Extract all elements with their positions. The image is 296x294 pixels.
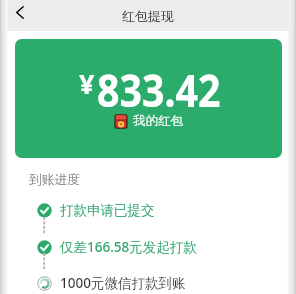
- button[interactable]: 仅差166.58元发起打款: [0, 228, 296, 264]
- staticText: 红包提现: [122, 8, 174, 24]
- button[interactable]: 打款申请已提交: [0, 192, 296, 228]
- button[interactable]: Back: [0, 0, 40, 26]
- staticText: 1000元微信打款到账: [60, 274, 186, 292]
- staticText: ¥: [79, 65, 95, 102]
- staticText: 我的红包: [133, 113, 183, 129]
- button[interactable]: ¥: [15, 39, 282, 158]
- staticText: 833.42: [97, 59, 221, 120]
- staticText: 打款申请已提交: [60, 202, 155, 219]
- button[interactable]: 1000元微信打款到账: [0, 264, 296, 294]
- staticText: 仅差166.58元发起打款: [60, 238, 197, 256]
- staticText: 到账进度: [29, 172, 80, 188]
